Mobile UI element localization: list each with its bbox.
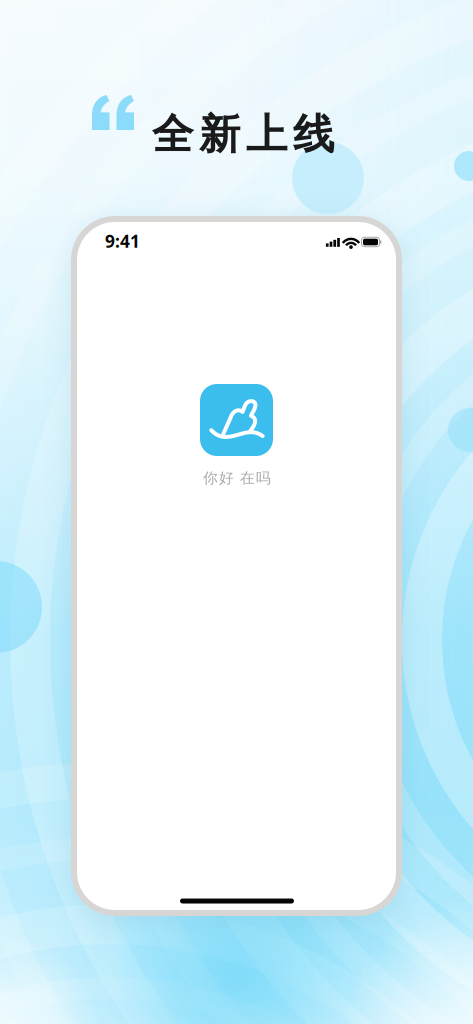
staticText: 9:41 (105, 229, 140, 252)
staticText: 全新上线 (152, 109, 334, 160)
staticText: 你好 在吗 (203, 469, 271, 487)
